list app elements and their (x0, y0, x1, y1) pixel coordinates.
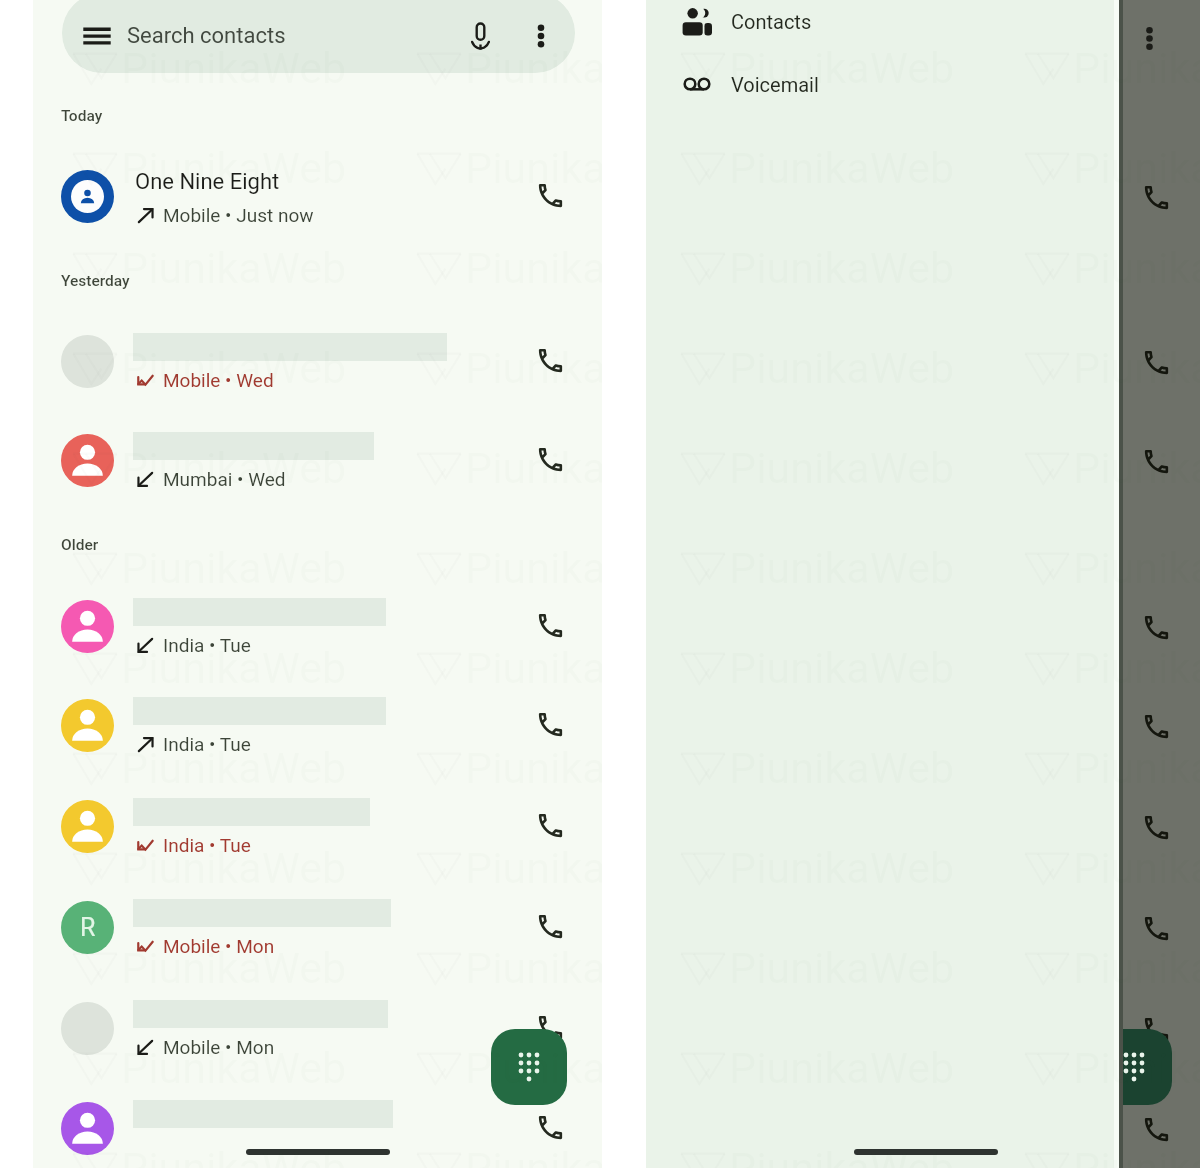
button[interactable]: Mobile • Mon (33, 983, 602, 1075)
staticText: PiunikaWeb (1073, 643, 1200, 693)
button[interactable]: More options (523, 18, 559, 54)
staticText: Mobile • Mon (163, 1036, 275, 1058)
staticText: Today (61, 107, 103, 125)
staticText: PiunikaWeb (121, 343, 347, 393)
button[interactable]: Call (529, 703, 571, 745)
staticText: PiunikaWeb (465, 343, 602, 393)
button[interactable]: Call (529, 438, 571, 480)
staticText: PiunikaWeb (1073, 143, 1200, 193)
staticText: PiunikaWeb (1073, 1043, 1200, 1093)
button[interactable]: Call (1135, 806, 1177, 848)
button[interactable]: Call (1135, 176, 1177, 218)
button[interactable]: Call (1135, 440, 1177, 482)
staticText: Older (61, 536, 99, 554)
staticText: Contacts (731, 10, 812, 33)
staticText: PiunikaWeb (465, 143, 602, 193)
staticText: PiunikaWeb (1073, 43, 1200, 93)
button[interactable]: Call (1135, 1008, 1177, 1050)
button[interactable]: Call (529, 174, 571, 216)
staticText: PiunikaWeb (1073, 243, 1200, 293)
button[interactable]: Contacts (646, 0, 1076, 49)
button[interactable]: Voicemail (646, 56, 1076, 112)
other: Open navigation menu (85, 26, 109, 46)
button[interactable]: Call (1135, 907, 1177, 949)
staticText: PiunikaWeb (465, 443, 602, 493)
button[interactable]: Call (529, 804, 571, 846)
staticText: PiunikaWeb (1073, 743, 1200, 793)
staticText: PiunikaWeb (121, 1043, 347, 1093)
staticText: PiunikaWeb (1073, 1143, 1200, 1168)
staticText: One Nine Eight (135, 169, 280, 195)
button[interactable]: Call (529, 604, 571, 646)
button[interactable]: Open navigation menu (62, 0, 575, 73)
staticText: R (80, 913, 96, 942)
staticText: Mumbai • Wed (163, 468, 286, 490)
button[interactable]: India • Tue (33, 680, 602, 772)
staticText: Search contacts (127, 23, 286, 49)
button[interactable]: India • Tue (33, 581, 602, 673)
button[interactable]: Mobile • Wed (33, 316, 602, 408)
button[interactable]: Call (529, 339, 571, 381)
button[interactable]: Call (33, 1083, 602, 1168)
staticText: PiunikaWeb (121, 843, 347, 893)
staticText: PiunikaWeb (121, 1143, 347, 1168)
staticText: India • Tue (163, 634, 251, 656)
staticText: PiunikaWeb (121, 143, 347, 193)
staticText: PiunikaWeb (465, 43, 602, 93)
button[interactable]: Call (1135, 341, 1177, 383)
staticText: PiunikaWeb (1073, 943, 1200, 993)
button[interactable]: Mumbai • Wed (33, 415, 602, 507)
staticText: Yesterday (61, 272, 130, 290)
staticText: India • Tue (163, 733, 251, 755)
staticText: Mobile • Just now (163, 204, 314, 226)
button[interactable]: Call (1135, 705, 1177, 747)
button[interactable]: Dialpad (1096, 1029, 1172, 1105)
button[interactable]: India • Tue (33, 781, 602, 873)
staticText: PiunikaWeb (729, 43, 955, 93)
button[interactable]: More options (1131, 20, 1167, 56)
staticText: PiunikaWeb (121, 743, 347, 793)
button[interactable]: Call (1135, 606, 1177, 648)
button[interactable]: One Nine Eight (33, 151, 602, 243)
staticText: PiunikaWeb (121, 443, 347, 493)
button[interactable]: Dialpad (491, 1029, 567, 1105)
staticText: PiunikaWeb (1073, 843, 1200, 893)
staticText: PiunikaWeb (1073, 343, 1200, 393)
button[interactable]: Call (529, 905, 571, 947)
staticText: PiunikaWeb (121, 243, 347, 293)
staticText: PiunikaWeb (121, 943, 347, 993)
button[interactable]: Voice search (460, 16, 500, 56)
staticText: PiunikaWeb (1073, 543, 1200, 593)
staticText: Voicemail (731, 73, 819, 96)
button[interactable]: Call (529, 1006, 571, 1048)
button[interactable]: Call (529, 1106, 571, 1148)
button[interactable]: R (33, 882, 602, 974)
staticText: PiunikaWeb (465, 1043, 602, 1093)
staticText: PiunikaWeb (729, 1143, 955, 1168)
staticText: Mobile • Wed (163, 369, 274, 391)
staticText: India • Tue (163, 834, 251, 856)
staticText: PiunikaWeb (121, 643, 347, 693)
staticText: PiunikaWeb (1073, 443, 1200, 493)
staticText: PiunikaWeb (121, 43, 347, 93)
staticText: Mobile • Mon (163, 935, 275, 957)
